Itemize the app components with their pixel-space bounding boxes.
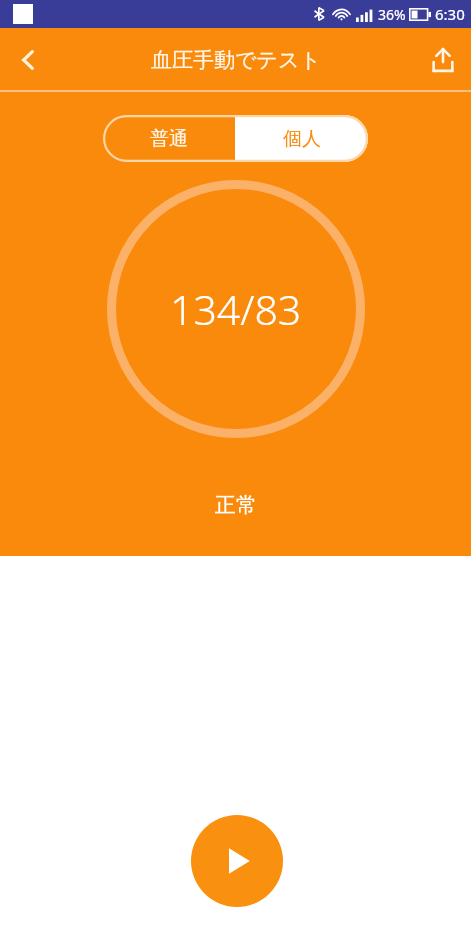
button[interactable]: 普通 [103,115,235,162]
button[interactable]: 個人 [235,115,368,162]
staticText: 血圧手動でテスト [151,47,321,73]
button[interactable]: Share [415,32,471,88]
staticText: 普通 [150,127,188,151]
staticText: 正常 [215,492,257,518]
button[interactable]: Back [0,32,56,88]
staticText: 36% [378,5,406,24]
staticText: 134/83 [170,281,302,337]
staticText: 6:30 [435,4,465,24]
button[interactable]: Start measurement [191,815,283,907]
staticText: 個人 [283,127,321,151]
